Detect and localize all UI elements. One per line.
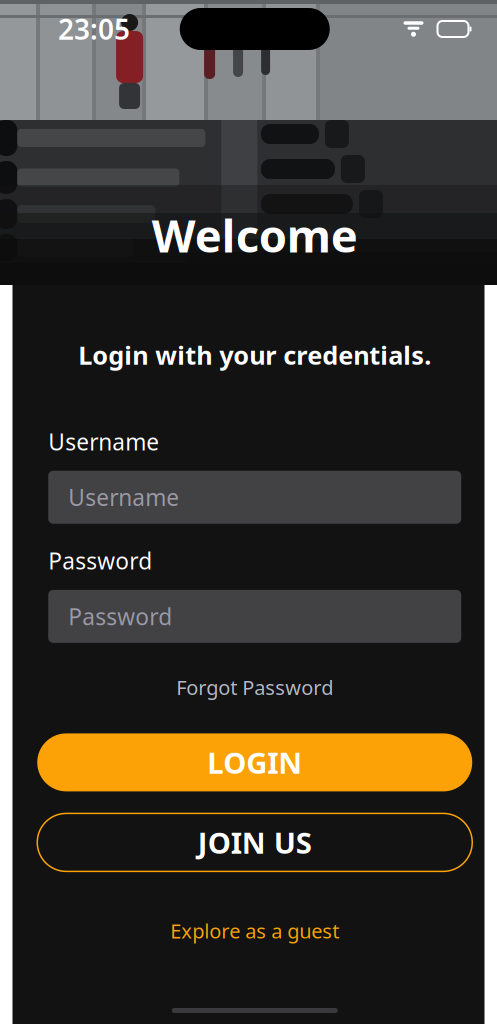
staticText: Explore as a guest (170, 917, 339, 944)
staticText: Welcome (152, 205, 358, 265)
button[interactable]: Explore as a guest (160, 913, 349, 948)
staticText: 23:05 (58, 10, 130, 48)
button[interactable]: Password (48, 590, 461, 643)
staticText: Login with your credentials. (78, 338, 431, 372)
staticText: JOIN US (198, 823, 312, 862)
button[interactable]: Forgot Password (166, 670, 343, 704)
staticText: Password (48, 546, 152, 576)
button[interactable]: Username (48, 471, 461, 524)
staticText: Username (68, 482, 179, 512)
staticText: Forgot Password (176, 674, 333, 700)
staticText: Username (48, 427, 159, 457)
staticText: LOGIN (207, 743, 302, 782)
button[interactable]: JOIN US (37, 813, 472, 871)
staticText: Password (68, 601, 172, 631)
button[interactable]: LOGIN (37, 733, 472, 791)
